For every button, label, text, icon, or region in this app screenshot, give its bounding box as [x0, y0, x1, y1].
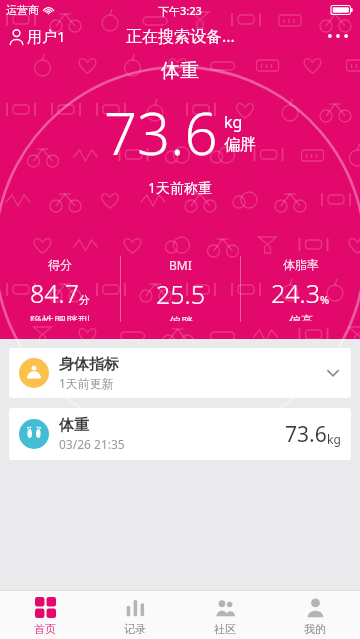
- staticText: 正在搜索设备...: [126, 25, 235, 47]
- staticText: 偏高: [289, 313, 313, 321]
- button[interactable]: 社区: [214, 591, 236, 639]
- button[interactable]: BMI: [156, 253, 205, 325]
- button[interactable]: 我的: [304, 591, 326, 639]
- staticText: 社区: [214, 622, 236, 636]
- staticText: 用户1: [27, 26, 66, 46]
- staticText: 身体指标: [59, 355, 119, 374]
- button[interactable]: More options: [316, 26, 360, 46]
- staticText: 73.6: [104, 93, 218, 172]
- button[interactable]: 得分: [30, 253, 90, 325]
- button[interactable]: 身体指标: [9, 348, 351, 398]
- staticText: 24.3: [271, 276, 320, 310]
- staticText: 记录: [124, 622, 146, 636]
- button[interactable]: 体脂率: [271, 253, 330, 325]
- staticText: 体重: [59, 416, 89, 435]
- staticText: 25.5: [156, 277, 205, 311]
- staticText: 隐性肥胖型: [30, 313, 90, 321]
- button[interactable]: 首页: [34, 591, 56, 639]
- button[interactable]: 记录: [124, 591, 146, 639]
- staticText: 84.7: [30, 276, 79, 310]
- staticText: 我的: [304, 622, 326, 636]
- staticText: 03/26 21:35: [59, 436, 125, 452]
- staticText: 得分: [48, 257, 72, 272]
- staticText: BMI: [169, 257, 192, 273]
- staticText: 下午3:23: [158, 3, 202, 18]
- staticText: 体脂率: [283, 257, 319, 272]
- staticText: %: [320, 292, 330, 307]
- staticText: 分: [79, 293, 90, 307]
- staticText: kg: [224, 111, 243, 133]
- button[interactable]: 体重: [9, 408, 351, 460]
- staticText: 偏胖: [169, 314, 193, 321]
- button[interactable]: 用户1: [0, 22, 74, 50]
- staticText: 偏胖: [224, 135, 256, 155]
- staticText: 73.6: [285, 420, 327, 449]
- staticText: 1天前称重: [148, 178, 213, 197]
- staticText: 首页: [34, 622, 56, 636]
- other: Expand: [325, 365, 341, 381]
- staticText: 运营商: [6, 3, 39, 17]
- staticText: 体重: [161, 59, 199, 83]
- staticText: 1天前更新: [59, 375, 114, 391]
- staticText: kg: [327, 431, 341, 447]
